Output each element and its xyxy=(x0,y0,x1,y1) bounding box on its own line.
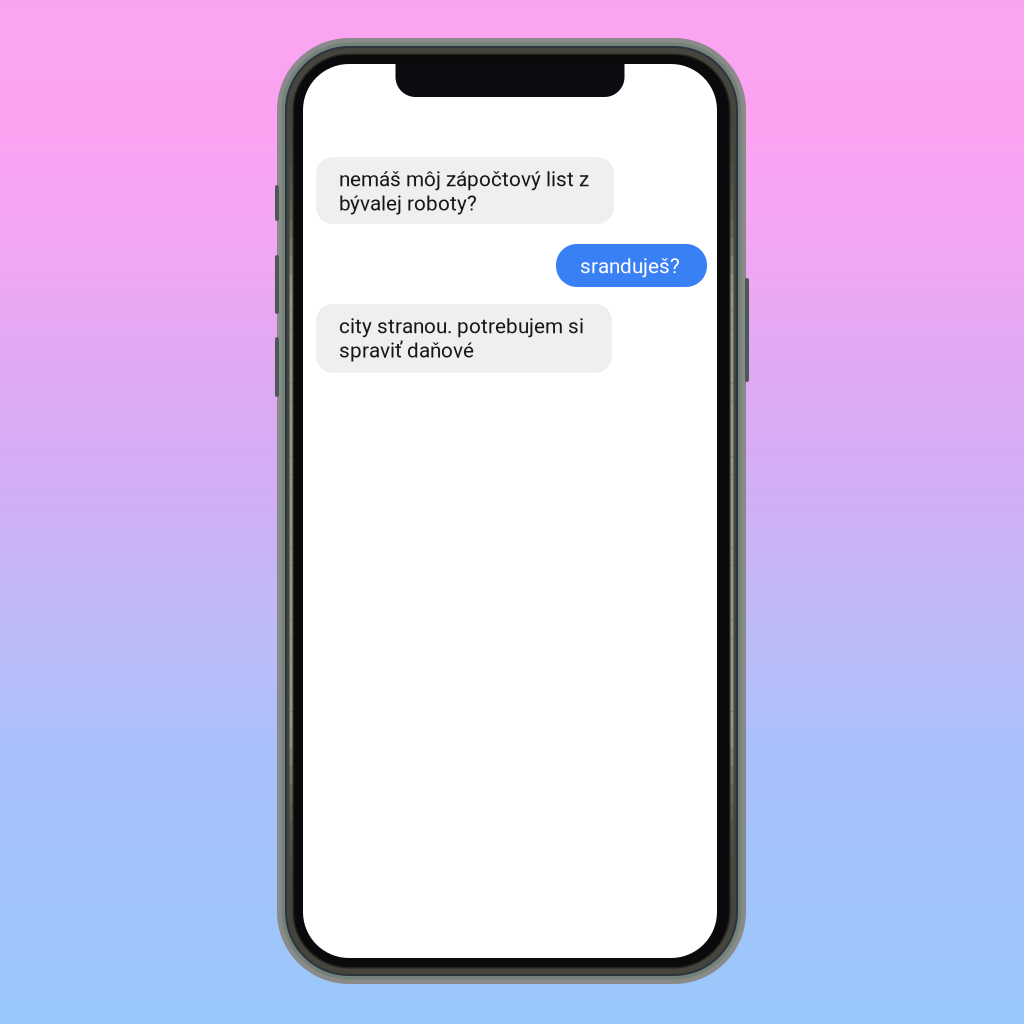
button[interactable]: city stranou. potrebujem si spraviť daňo… xyxy=(316,304,612,373)
staticText: nemáš môj zápočtový list z bývalej robot… xyxy=(339,167,589,215)
staticText: sranduješ? xyxy=(580,254,680,278)
button[interactable]: sranduješ? xyxy=(556,244,707,287)
button[interactable]: nemáš môj zápočtový list z bývalej robot… xyxy=(316,157,614,224)
staticText: city stranou. potrebujem si spraviť daňo… xyxy=(339,314,584,362)
